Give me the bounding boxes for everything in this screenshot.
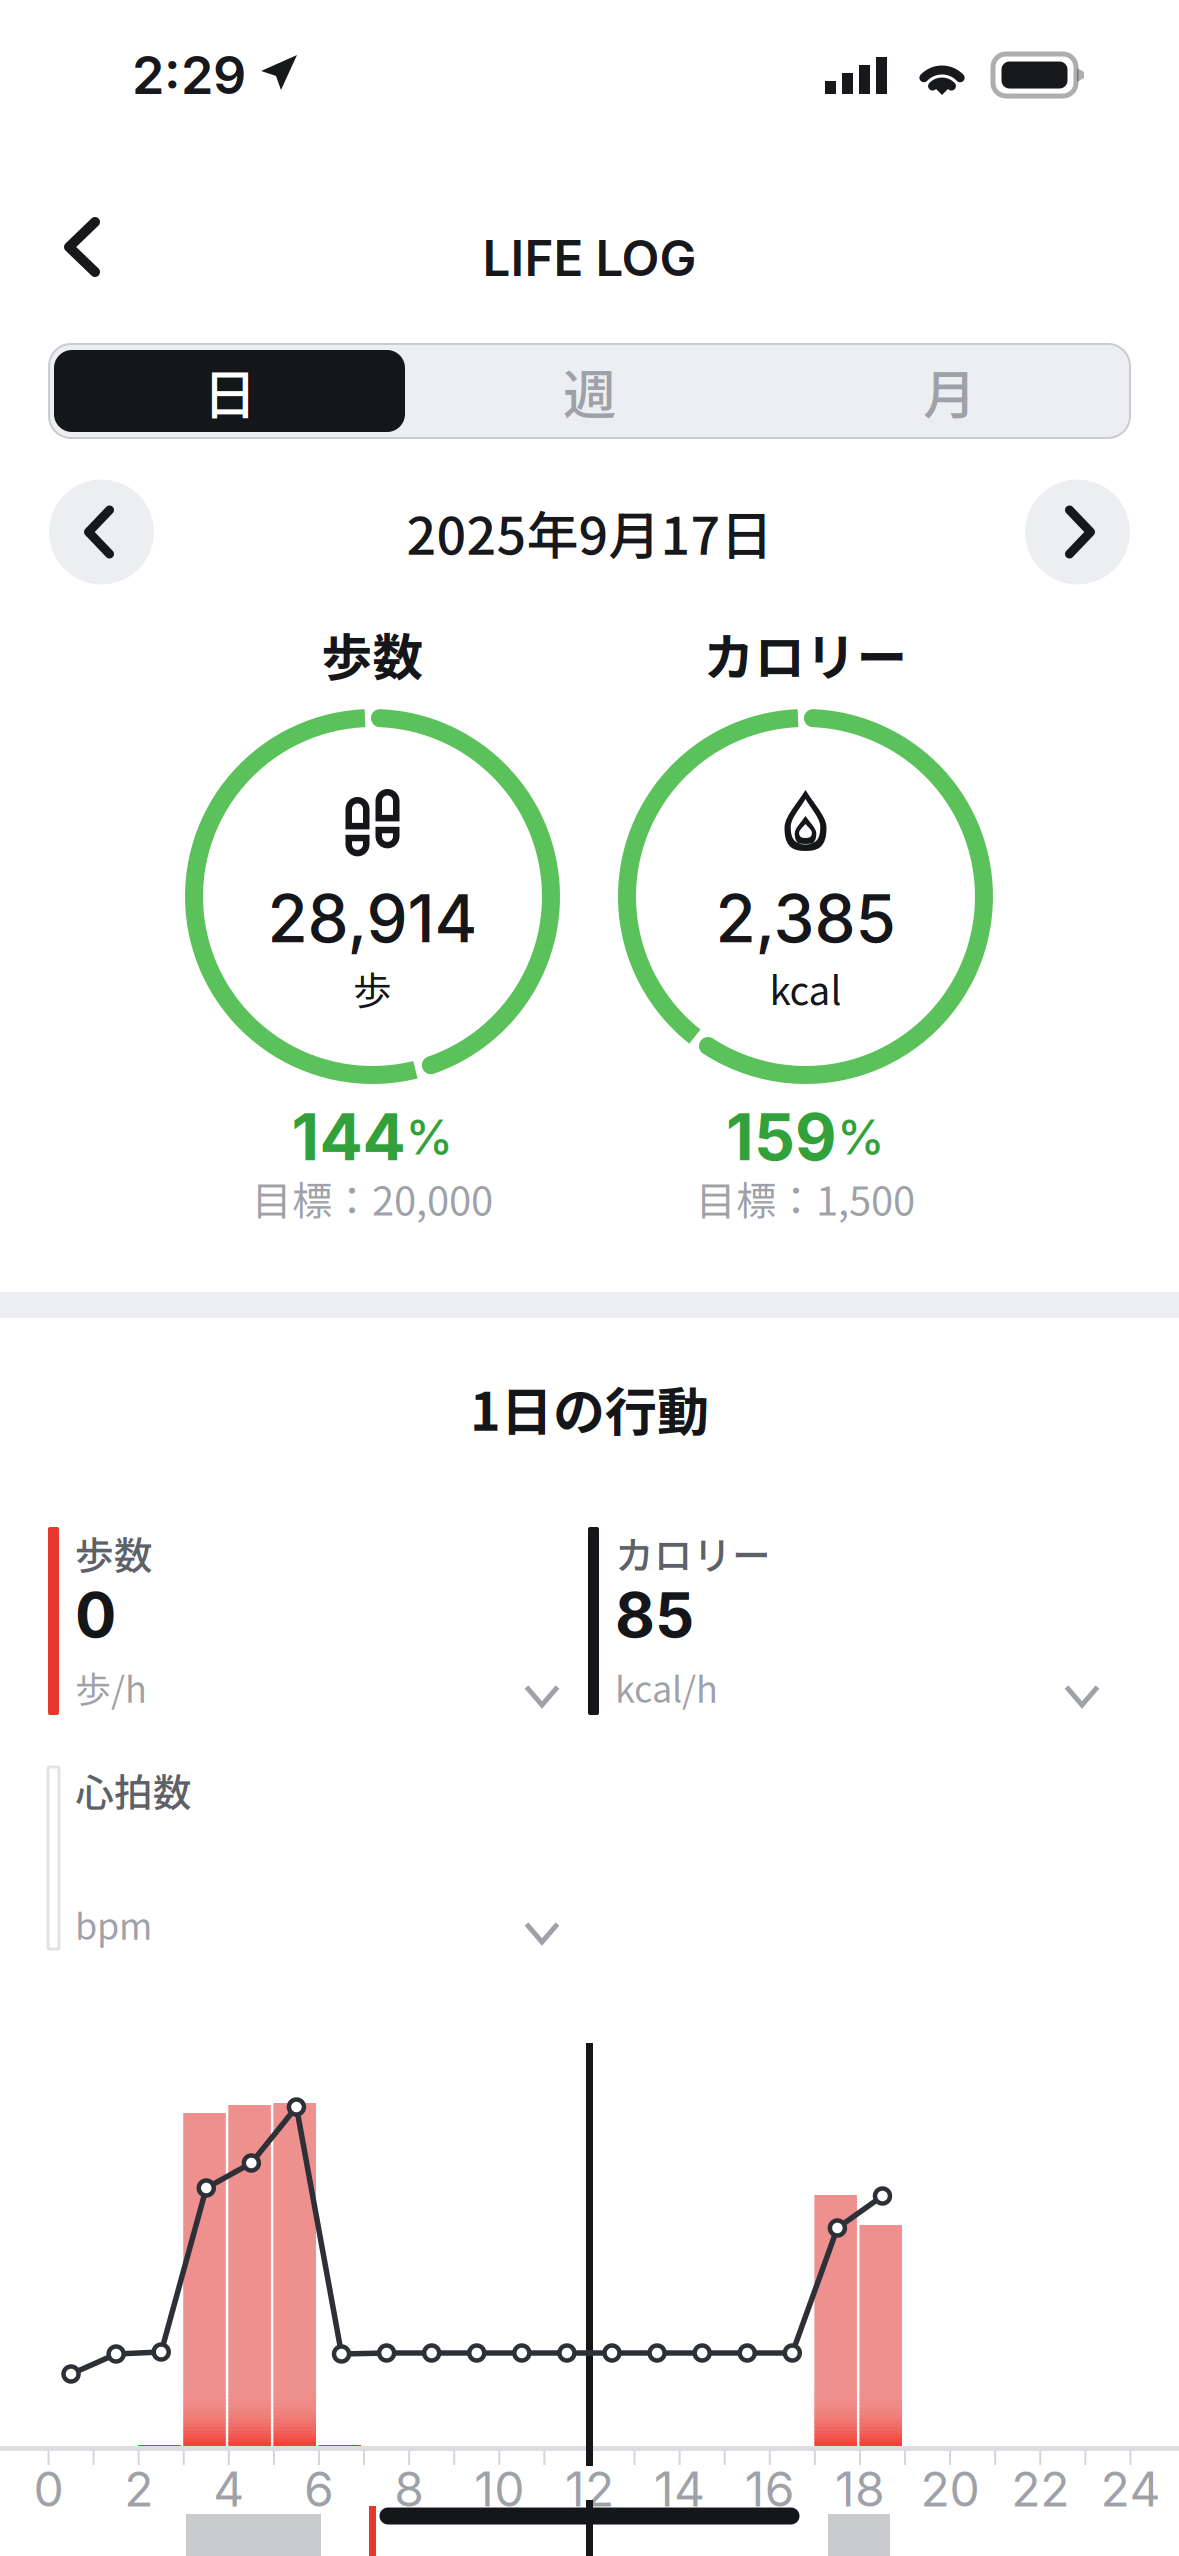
staticText: 14: [654, 2460, 705, 2518]
staticText: 22: [1011, 2460, 1069, 2518]
staticText: 2025年9月17日: [406, 494, 772, 570]
button[interactable]: 月: [769, 344, 1129, 438]
staticText: 歩/h: [75, 1661, 147, 1713]
staticText: 2,385: [715, 879, 895, 958]
button[interactable]: Back: [0, 191, 148, 303]
staticText: %: [405, 1108, 453, 1166]
staticText: 12: [565, 2460, 614, 2518]
staticText: bpm: [75, 1898, 152, 1950]
staticText: 0: [75, 1578, 116, 1652]
staticText: 20: [921, 2460, 980, 2518]
staticText: 10: [474, 2460, 524, 2518]
staticText: 85: [615, 1578, 694, 1652]
button[interactable]: 歩数: [48, 1527, 588, 1715]
staticText: kcal: [769, 960, 841, 1016]
staticText: 159: [726, 1098, 837, 1176]
staticText: 6: [304, 2460, 334, 2518]
button[interactable]: 週: [409, 344, 769, 438]
button[interactable]: 心拍数: [48, 1764, 588, 1952]
staticText: 心拍数: [75, 1762, 192, 1818]
staticText: 18: [835, 2460, 885, 2518]
staticText: 歩数: [321, 617, 423, 691]
staticText: 16: [745, 2460, 795, 2518]
staticText: kcal/h: [615, 1661, 718, 1713]
staticText: 144: [291, 1098, 405, 1176]
button[interactable]: Next day: [1025, 479, 1130, 584]
staticText: 目標：1,500: [696, 1169, 915, 1227]
button[interactable]: 日: [49, 344, 409, 438]
staticText: 2:29: [132, 43, 246, 106]
staticText: 1日の行動: [470, 1370, 709, 1446]
staticText: 0: [33, 2460, 63, 2518]
staticText: 4: [213, 2460, 244, 2518]
staticText: 歩: [353, 960, 392, 1016]
staticText: 歩数: [75, 1525, 153, 1581]
button[interactable]: カロリー: [588, 1527, 1128, 1715]
staticText: カロリー: [703, 617, 907, 691]
button[interactable]: Previous day: [49, 479, 154, 584]
staticText: カロリー: [615, 1525, 771, 1581]
staticText: 月: [923, 352, 976, 430]
staticText: LIFE LOG: [482, 228, 696, 288]
staticText: 2: [124, 2460, 153, 2518]
staticText: 目標：20,000: [252, 1169, 493, 1227]
staticText: 週: [563, 352, 616, 430]
staticText: 8: [394, 2460, 424, 2518]
staticText: 28,914: [267, 879, 477, 958]
staticText: %: [837, 1108, 885, 1166]
staticText: 24: [1100, 2460, 1160, 2518]
staticText: 日: [203, 352, 256, 430]
